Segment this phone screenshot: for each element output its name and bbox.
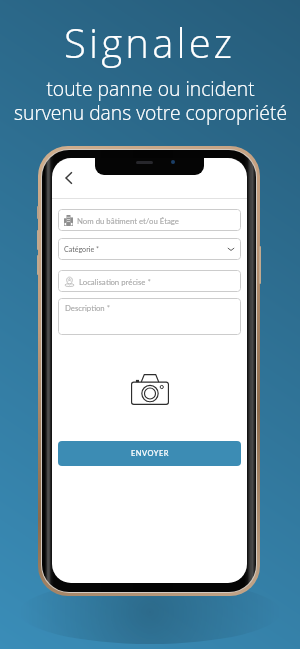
button[interactable]: ENVOYER [58,441,241,466]
button[interactable]: Back [60,169,80,187]
button[interactable]: Nom du bâtiment et/ou Étage [58,209,241,231]
staticText: Catégorie * [64,245,100,254]
staticText: Localisation précise * [79,277,151,286]
button[interactable]: Localisation précise [58,270,241,292]
button[interactable]: Add photo [131,374,169,405]
staticText: Signalez [64,15,236,69]
staticText: toute panne ou incident survenu dans vot… [14,75,287,125]
staticText: Description * [65,303,111,312]
button[interactable]: Description [58,298,241,335]
staticText: Nom du bâtiment et/ou Étage [77,216,179,225]
button[interactable]: Catégorie [58,238,241,260]
staticText: ENVOYER [131,449,169,458]
